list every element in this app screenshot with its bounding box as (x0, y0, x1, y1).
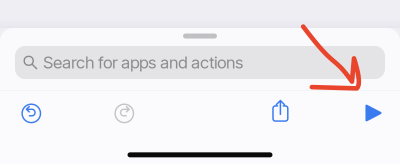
button[interactable]: Undo (9, 91, 53, 135)
staticText: Search for apps and actions (43, 52, 243, 73)
button[interactable]: Share (258, 89, 302, 133)
button[interactable]: Run shortcut (351, 91, 395, 135)
button[interactable]: Redo (102, 91, 146, 135)
